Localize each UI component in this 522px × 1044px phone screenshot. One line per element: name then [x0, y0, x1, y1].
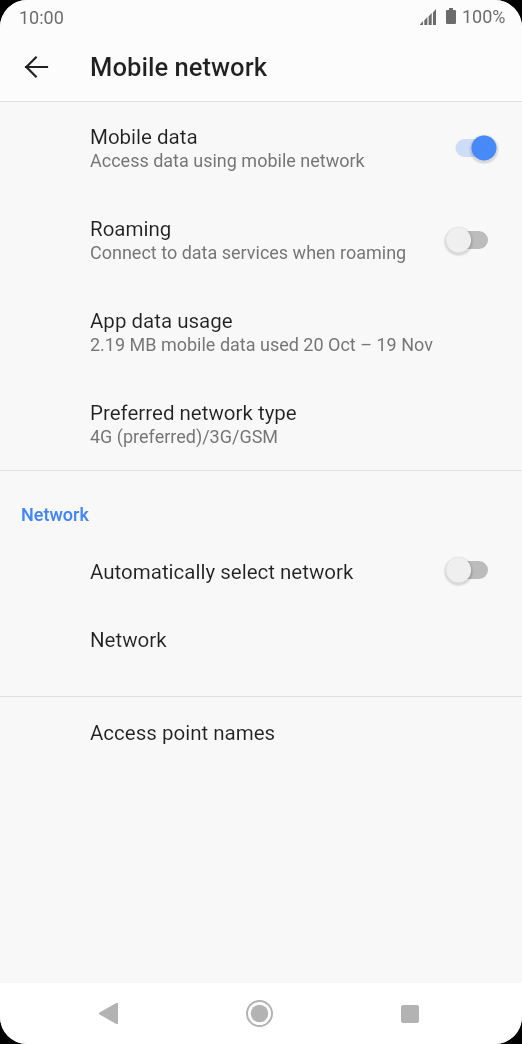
staticText: 4G (preferred)/3G/GSM: [90, 426, 279, 447]
button[interactable]: Preferred network type: [0, 378, 522, 470]
staticText: 2.19 MB mobile data used 20 Oct – 19 Nov: [90, 334, 433, 355]
staticText: Mobile data: [90, 125, 198, 149]
button[interactable]: Mobile data: [0, 102, 522, 194]
staticText: Access data using mobile network: [90, 150, 365, 171]
button[interactable]: Network: [0, 604, 522, 672]
button[interactable]: App data usage: [0, 286, 522, 378]
button[interactable]: Recent apps: [386, 983, 434, 1044]
staticText: Roaming: [90, 217, 172, 241]
staticText: Network: [21, 504, 89, 525]
staticText: Connect to data services when roaming: [90, 242, 407, 263]
staticText: App data usage: [90, 309, 233, 333]
staticText: 10:00: [19, 7, 64, 28]
staticText: Network: [90, 628, 167, 652]
button[interactable]: Automatically select network: [0, 536, 522, 604]
button[interactable]: Roaming: [0, 194, 522, 286]
button[interactable]: Navigate up: [13, 44, 59, 90]
button[interactable]: Home: [235, 983, 283, 1044]
staticText: Access point names: [90, 721, 276, 745]
staticText: Mobile network: [90, 52, 268, 82]
button[interactable]: Back: [84, 983, 132, 1044]
staticText: Preferred network type: [90, 401, 297, 425]
staticText: 100%: [462, 6, 506, 27]
button[interactable]: Access point names: [0, 697, 522, 765]
staticText: Automatically select network: [90, 560, 354, 584]
